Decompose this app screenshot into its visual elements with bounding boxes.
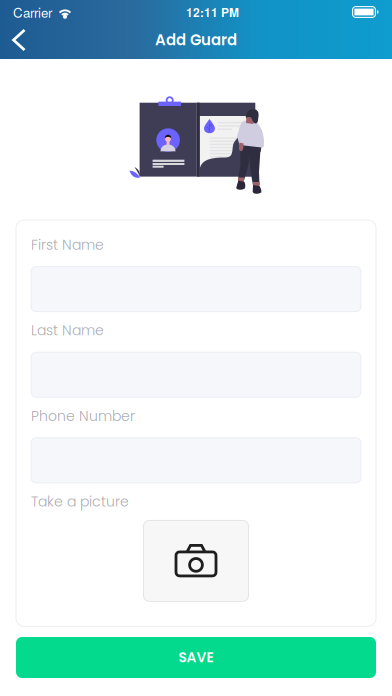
staticText: Add Guard xyxy=(155,29,237,50)
button[interactable]: Back xyxy=(4,24,34,56)
staticText: 12:11 PM xyxy=(186,3,239,21)
staticText: Carrier xyxy=(13,2,52,22)
button[interactable]: SAVE xyxy=(16,637,376,678)
staticText: Take a picture xyxy=(31,492,129,511)
button[interactable]: Take a picture xyxy=(143,520,248,601)
staticText: Phone Number xyxy=(31,406,135,426)
staticText: Last Name xyxy=(31,321,104,340)
staticText: First Name xyxy=(31,235,104,255)
staticText: SAVE xyxy=(178,648,213,667)
